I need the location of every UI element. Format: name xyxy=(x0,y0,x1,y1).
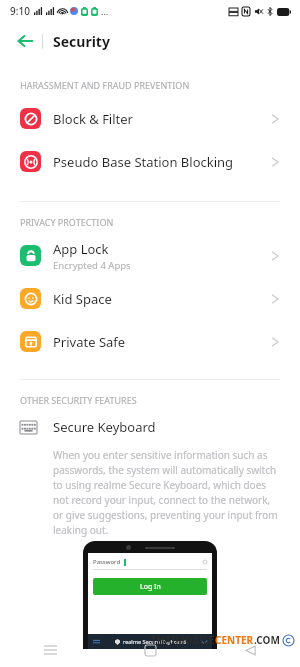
staticText: Block & Filter xyxy=(53,110,133,128)
staticText: Private Safe xyxy=(53,333,126,351)
staticText: Secure Keyboard xyxy=(53,418,156,436)
button[interactable]: Back xyxy=(8,24,42,58)
staticText: Pseudo Base Station Blocking xyxy=(53,153,234,171)
staticText: Encrypted 4 Apps xyxy=(53,259,131,272)
staticText: CENTER xyxy=(215,633,254,647)
staticText: 9:10 xyxy=(10,4,30,18)
button[interactable]: Kid Space xyxy=(0,277,300,320)
staticText: .COM xyxy=(254,633,280,647)
button[interactable]: Log In xyxy=(93,578,207,595)
button[interactable]: Block & Filter xyxy=(0,97,300,140)
staticText: When you enter sensitive information suc… xyxy=(53,448,280,537)
button[interactable]: Home xyxy=(100,633,200,667)
staticText: OTHER SECURITY FEATURES xyxy=(20,394,137,406)
staticText: Password xyxy=(93,558,121,566)
staticText: Log In xyxy=(140,582,161,592)
button[interactable]: Private Safe xyxy=(0,320,300,363)
button[interactable]: App Lock xyxy=(0,234,300,277)
staticText: realme Secure Keyboard xyxy=(123,638,186,645)
staticText: HARASSMENT AND FRAUD PREVENTION xyxy=(20,79,190,91)
staticText: THAIMOBILE xyxy=(151,633,215,647)
button[interactable]: Recent apps xyxy=(0,633,100,667)
staticText: Security xyxy=(53,32,110,51)
staticText: ... xyxy=(101,5,109,17)
staticText: PRIVACY PROTECTION xyxy=(20,216,114,228)
button[interactable]: Pseudo Base Station Blocking xyxy=(0,140,300,183)
staticText: App Lock xyxy=(53,240,109,258)
button[interactable]: Back xyxy=(200,633,300,667)
button[interactable]: Secure Keyboard xyxy=(0,412,300,537)
staticText: Kid Space xyxy=(53,290,112,308)
